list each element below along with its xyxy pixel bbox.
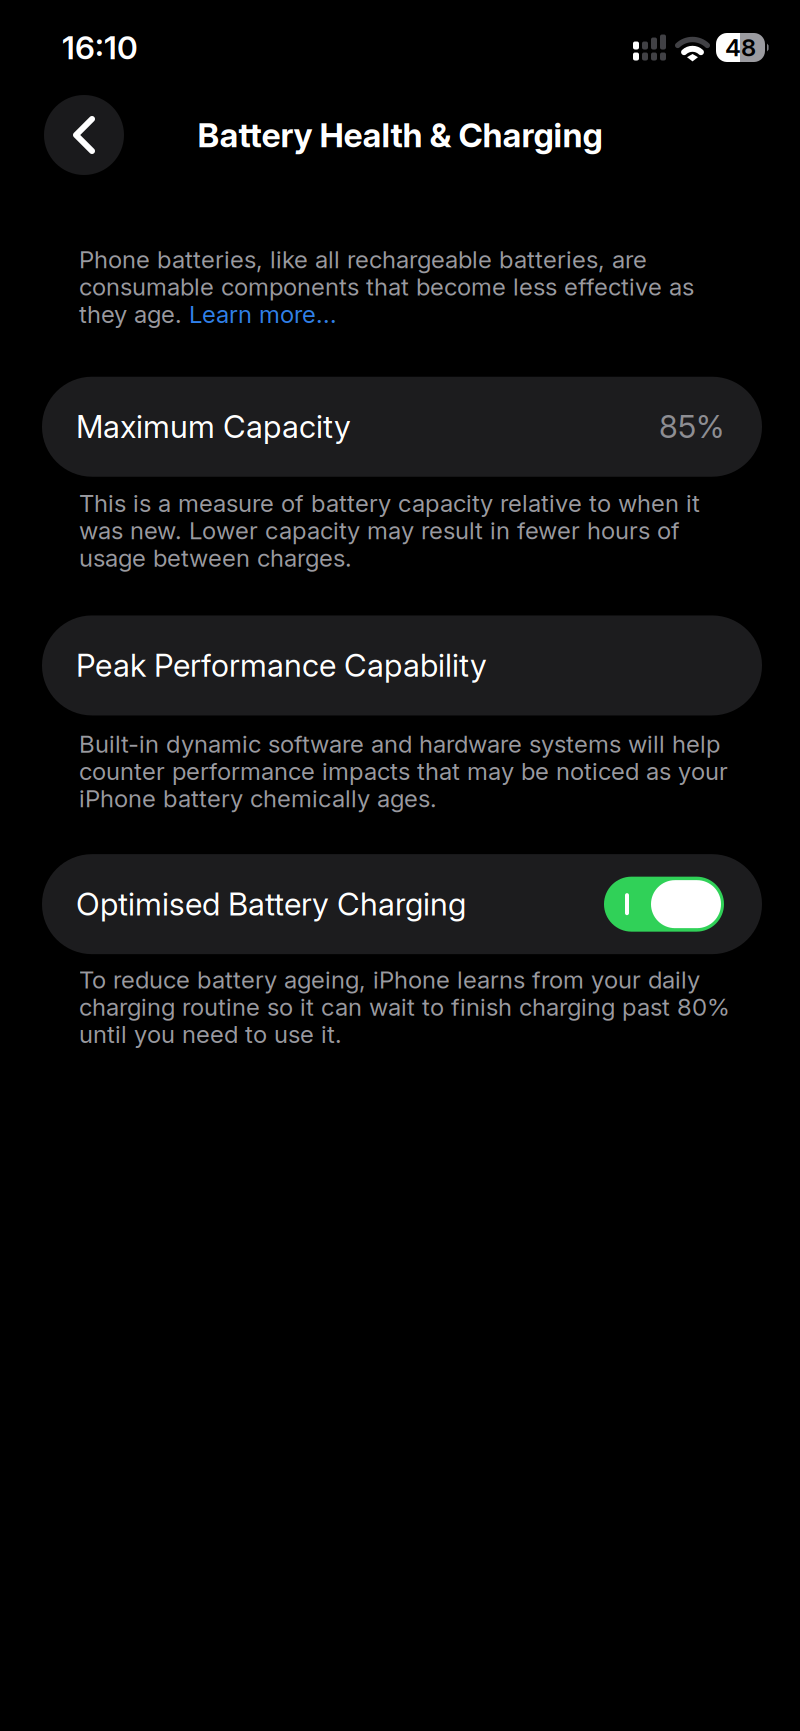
button[interactable]: Back [44,95,124,175]
button[interactable]: Optimised Battery Charging [42,854,762,954]
button[interactable]: Peak Performance Capability [42,615,762,715]
staticText: Battery Health & Charging [197,115,602,155]
staticText: Maximum Capacity [76,408,351,446]
staticText: Phone batteries, like all rechargeable b… [79,245,694,329]
staticText: Optimised Battery Charging [76,885,466,923]
staticText: 48 [725,33,756,62]
button[interactable]: Optimised Battery Charging [604,877,724,932]
button[interactable]: Maximum Capacity [42,377,762,477]
staticText: Built-in dynamic software and hardware s… [79,729,728,813]
staticText: 16:10 [62,28,138,67]
staticText: To reduce battery ageing, iPhone learns … [79,965,730,1049]
staticText: 85% [659,408,724,446]
staticText: Peak Performance Capability [76,647,487,684]
staticText: This is a measure of battery capacity re… [79,489,700,572]
